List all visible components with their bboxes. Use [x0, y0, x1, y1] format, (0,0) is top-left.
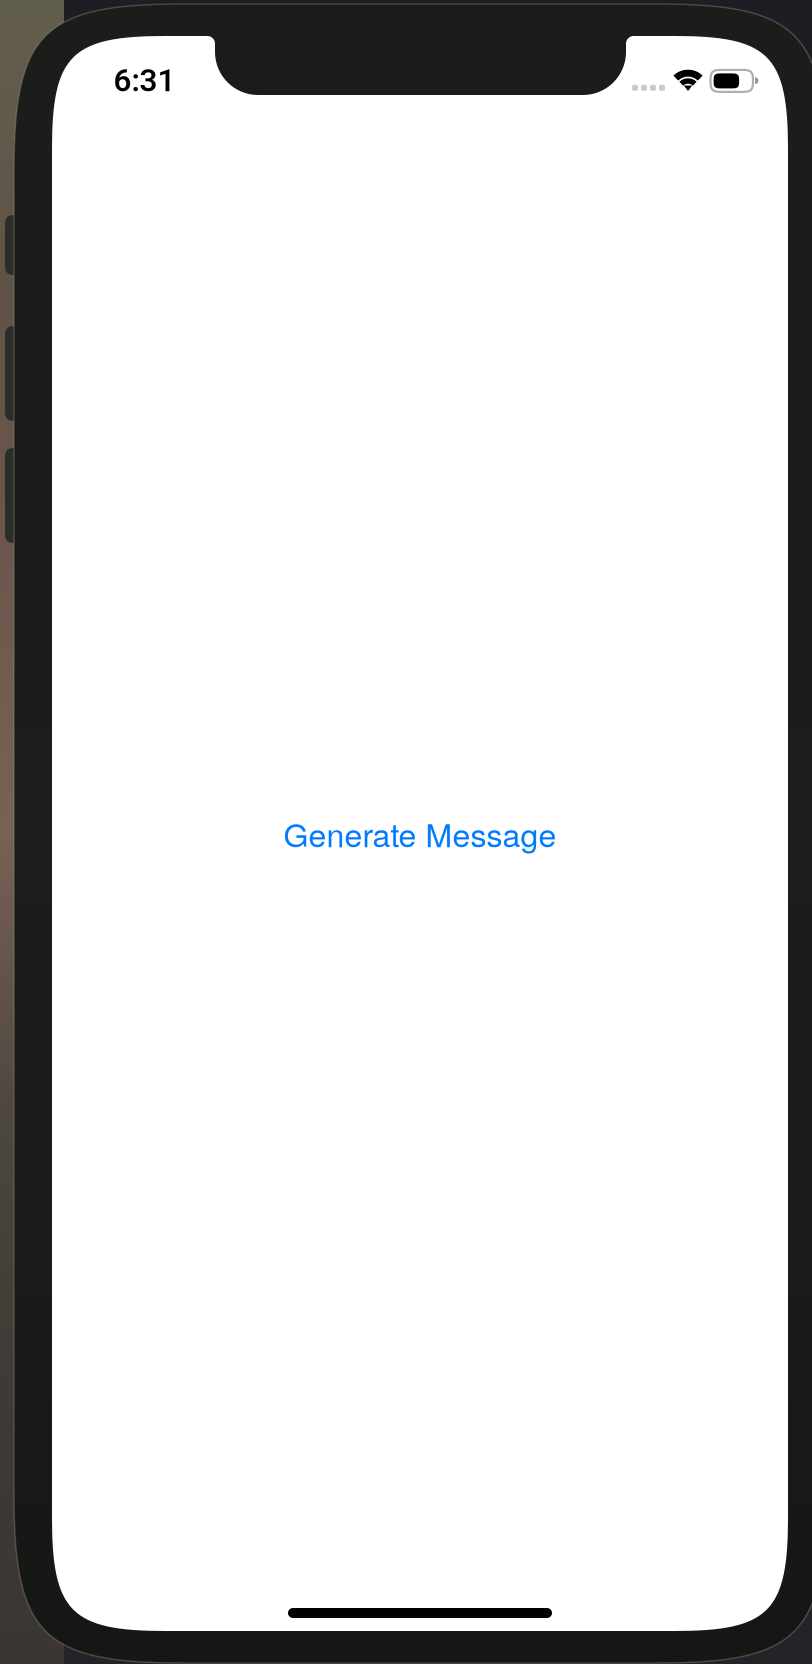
- staticText: Generate Message: [283, 811, 556, 856]
- button[interactable]: Generate Message: [52, 36, 788, 1631]
- staticText: 6:31: [113, 62, 175, 99]
